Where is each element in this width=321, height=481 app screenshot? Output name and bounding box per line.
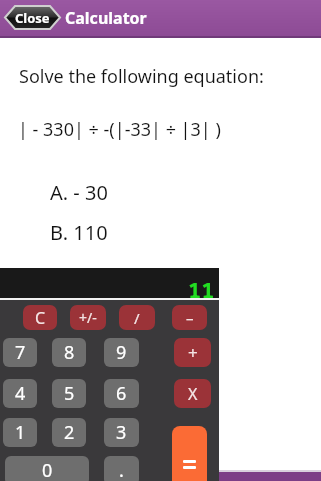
button[interactable]: / [119, 305, 155, 330]
staticText: 7 [15, 340, 26, 365]
button[interactable]: 9 [104, 338, 139, 367]
button[interactable] [172, 426, 207, 481]
button[interactable]: C [23, 305, 57, 330]
button[interactable]: 6 [104, 379, 139, 408]
staticText: 3 [116, 420, 127, 445]
staticText: X [188, 383, 198, 405]
button[interactable]: + [174, 338, 211, 367]
staticText: 9 [116, 340, 127, 365]
staticText: 0 [42, 458, 53, 481]
staticText: – [186, 308, 194, 328]
button[interactable]: +/- [70, 305, 106, 330]
staticText: 5 [64, 381, 75, 406]
button[interactable]: 3 [104, 418, 139, 447]
staticText: B. 110 [50, 219, 108, 246]
staticText: 1 [15, 420, 26, 445]
button[interactable]: A. - 30 [50, 179, 108, 206]
button[interactable]: . [104, 456, 139, 481]
staticText: Solve the following equation: [19, 64, 264, 89]
staticText: / [134, 308, 140, 328]
staticText: 11 [188, 274, 215, 304]
staticText: C [35, 307, 46, 329]
staticText: | - 330| ÷ -(|-33| ÷ |3| ) [18, 117, 221, 142]
button[interactable]: B. 110 [50, 219, 108, 246]
button[interactable]: 7 [3, 338, 37, 367]
staticText: 6 [116, 381, 127, 406]
staticText: 8 [64, 340, 75, 365]
button[interactable]: – [172, 305, 207, 330]
button[interactable]: X [174, 379, 211, 408]
staticText: Calculator [65, 7, 147, 29]
staticText: . [119, 458, 124, 481]
button[interactable]: 2 [52, 418, 86, 447]
staticText: 4 [15, 381, 26, 406]
staticText: Close [15, 9, 50, 27]
staticText: + [188, 341, 198, 364]
button[interactable]: Close [4, 5, 61, 30]
button[interactable]: 0 [5, 456, 89, 481]
button[interactable]: 1 [3, 418, 37, 447]
staticText: 2 [64, 420, 75, 445]
staticText: +/- [79, 308, 97, 327]
button[interactable]: 4 [3, 379, 37, 408]
button[interactable]: 5 [52, 379, 86, 408]
staticText: A. - 30 [50, 179, 108, 206]
button[interactable]: 8 [52, 338, 86, 367]
